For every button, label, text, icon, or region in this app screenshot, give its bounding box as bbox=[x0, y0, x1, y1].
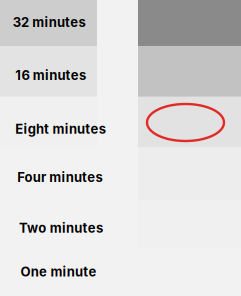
staticText: Two minutes bbox=[19, 220, 103, 236]
button[interactable]: 16 minutes bbox=[15, 50, 241, 100]
button[interactable]: 32 minutes bbox=[13, 0, 241, 48]
staticText: 32 minutes bbox=[13, 14, 85, 30]
staticText: Four minutes bbox=[17, 169, 102, 185]
button[interactable]: Four minutes bbox=[17, 151, 241, 203]
staticText: 16 minutes bbox=[15, 67, 86, 83]
staticText: Eight minutes bbox=[15, 121, 106, 137]
button[interactable]: One minute bbox=[21, 246, 241, 296]
staticText: One minute bbox=[21, 264, 96, 280]
button[interactable]: Two minutes bbox=[19, 204, 241, 252]
button[interactable]: Eight minutes bbox=[15, 104, 241, 154]
